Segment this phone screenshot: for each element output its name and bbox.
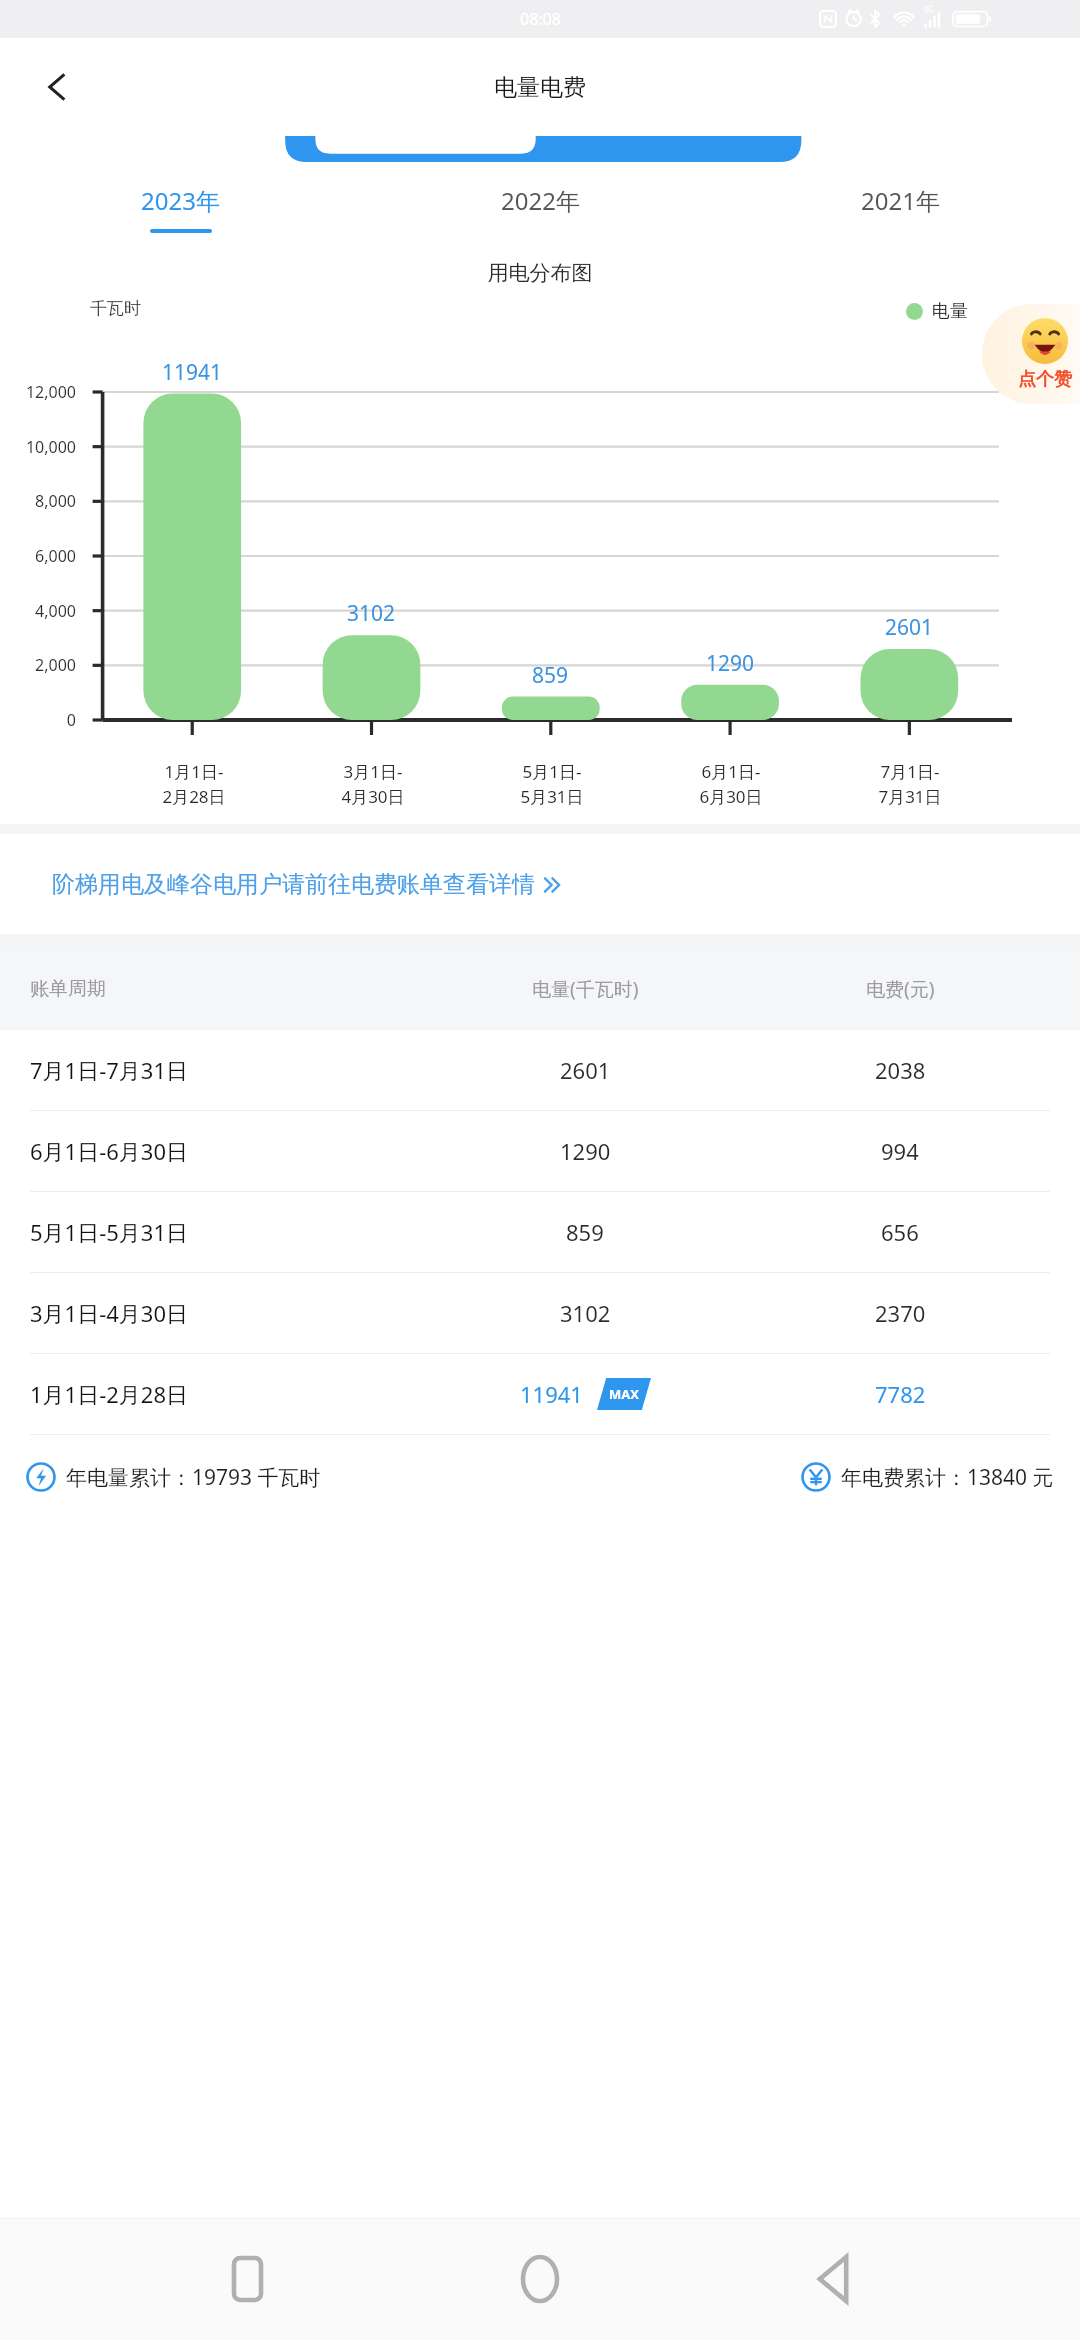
button[interactable]: Back	[30, 60, 84, 114]
staticText: 年电费累计：13840 元	[841, 1463, 1054, 1492]
staticText: 2,000	[0, 654, 76, 676]
staticText: 11941	[162, 358, 223, 387]
staticText: 3102	[560, 1298, 611, 1328]
staticText: 11941	[520, 1379, 583, 1409]
staticText: 5月1日-5月31日	[30, 1217, 189, 1247]
staticText: 3102	[347, 599, 396, 628]
staticText: 859	[566, 1217, 604, 1247]
staticText: 2038	[875, 1055, 926, 1085]
staticText: 电费(元)	[866, 976, 935, 1002]
staticText: 8,000	[0, 490, 76, 512]
staticText: 电量电费	[494, 73, 586, 102]
button[interactable]: 2023年	[0, 164, 360, 252]
staticText: 5月1日- 5月31日	[520, 760, 584, 808]
staticText: 08:08	[520, 8, 561, 30]
staticText: 656	[881, 1217, 919, 1247]
staticText: 7782	[875, 1379, 926, 1409]
staticText: 点个赞	[1018, 368, 1072, 391]
staticText: 3月1日-4月30日	[30, 1298, 189, 1328]
button[interactable]: Back	[787, 2233, 879, 2325]
staticText: 电量	[932, 300, 968, 323]
button[interactable]: 阶梯用电及峰谷电用户请前往电费账单查看详情	[0, 834, 1080, 934]
staticText: 2022年	[501, 184, 580, 217]
staticText: 2023年	[141, 184, 220, 217]
staticText: 994	[881, 1136, 919, 1166]
button[interactable]: 1月1日-2月28日	[0, 1354, 1080, 1434]
staticText: 年电量累计：19793 千瓦时	[66, 1463, 321, 1492]
staticText: 用电分布图	[0, 260, 1080, 286]
staticText: 电量(千瓦时)	[532, 976, 639, 1002]
staticText: MAX	[609, 1385, 639, 1403]
staticText: 2021年	[861, 184, 940, 217]
button[interactable]: Home	[494, 2233, 586, 2325]
staticText: 6月1日-6月30日	[30, 1136, 189, 1166]
button[interactable]: 6月1日-6月30日	[0, 1111, 1080, 1191]
staticText: 4,000	[0, 600, 76, 622]
staticText: 阶梯用电及峰谷电用户请前往电费账单查看详情	[52, 870, 535, 899]
staticText: 账单周期	[30, 977, 106, 1001]
staticText: 2370	[875, 1298, 926, 1328]
staticText: 1月1日-2月28日	[30, 1379, 189, 1409]
staticText: 1月1日- 2月28日	[162, 760, 226, 808]
staticText: 7月1日-7月31日	[30, 1055, 189, 1085]
staticText: 10,000	[0, 436, 76, 458]
staticText: 6月1日- 6月30日	[699, 760, 763, 808]
staticText: 6,000	[0, 545, 76, 567]
staticText: 1290	[706, 649, 755, 678]
staticText: 859	[532, 661, 569, 690]
staticText: 2601	[560, 1055, 611, 1085]
button[interactable]: 2022年	[360, 164, 720, 252]
button[interactable]: 2021年	[720, 164, 1080, 252]
button[interactable]: 3月1日-4月30日	[0, 1273, 1080, 1353]
staticText: 12,000	[0, 381, 76, 403]
staticText: 3月1日- 4月30日	[341, 760, 405, 808]
staticText: 7月1日- 7月31日	[878, 760, 942, 808]
staticText: 0	[0, 709, 76, 731]
button[interactable]: 点个赞	[982, 304, 1080, 404]
staticText: 2601	[885, 613, 934, 642]
button[interactable]: Recents	[201, 2233, 293, 2325]
button[interactable]: 5月1日-5月31日	[0, 1192, 1080, 1272]
staticText: 千瓦时	[90, 298, 141, 319]
button[interactable]: 7月1日-7月31日	[0, 1030, 1080, 1110]
staticText: 1290	[560, 1136, 611, 1166]
